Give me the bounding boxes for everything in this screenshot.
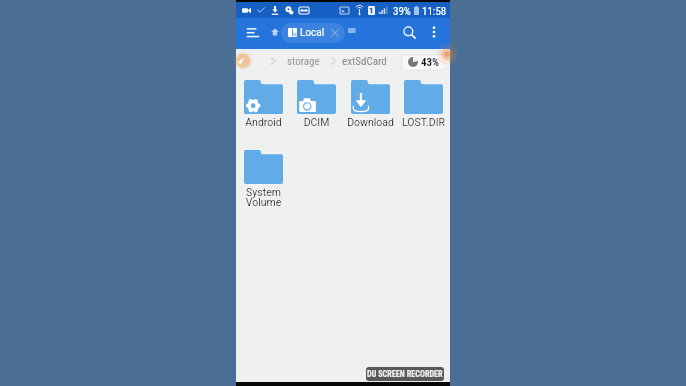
button[interactable]: DCIM [290,77,343,131]
button[interactable]: Download [344,77,397,131]
button[interactable]: Home [266,23,284,41]
staticText: extSdCard [342,55,387,68]
staticText: 11:58 [422,5,447,18]
staticText: Android [237,116,290,128]
button[interactable]: Android [237,77,290,131]
staticText: LOST.DIR [397,116,450,128]
button[interactable]: More options [424,22,444,42]
staticText: System Volume [237,186,290,209]
button[interactable]: Search [398,21,420,43]
staticText: storage [287,55,320,68]
button[interactable]: Close tab [329,27,341,39]
button[interactable]: Local [281,23,345,43]
staticText: 39% [393,5,411,18]
staticText: Local [300,27,325,39]
button[interactable]: extSdCard [342,55,387,68]
staticText: DCIM [290,116,343,128]
button[interactable]: System Volume [237,147,290,201]
staticText: 43% [421,56,440,69]
staticText: Download [344,116,397,128]
button[interactable]: storage [287,55,320,68]
button[interactable]: Menu [242,22,263,43]
button[interactable] [408,57,418,67]
button[interactable]: LOST.DIR [397,77,450,131]
staticText: DU SCREEN RECORDER [367,369,443,379]
button[interactable]: New tab [348,26,357,35]
